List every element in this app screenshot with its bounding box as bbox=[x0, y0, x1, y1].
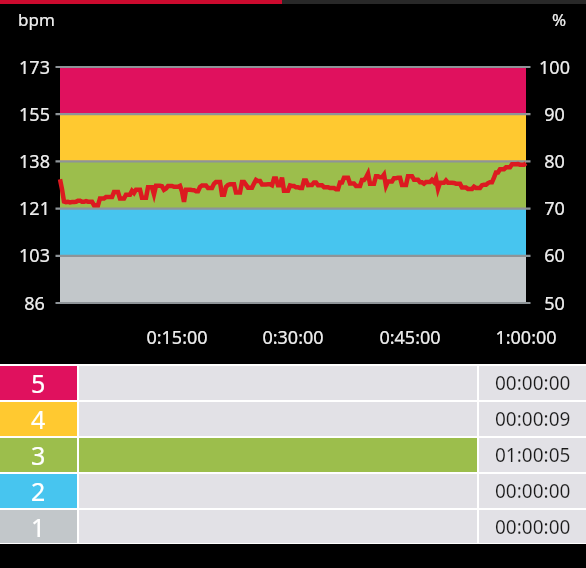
staticText: 60 bbox=[544, 243, 565, 268]
staticText: % bbox=[552, 8, 567, 31]
staticText: 155 bbox=[19, 102, 50, 127]
button[interactable]: 1 bbox=[0, 510, 586, 543]
staticText: 4 bbox=[31, 402, 46, 436]
other: Heart rate zone chart bbox=[0, 0, 586, 568]
staticText: 103 bbox=[19, 243, 50, 268]
button[interactable]: 2 bbox=[0, 474, 586, 508]
button[interactable]: 4 bbox=[0, 402, 586, 436]
staticText: 50 bbox=[544, 291, 565, 316]
staticText: 01:00:05 bbox=[495, 442, 571, 468]
staticText: 70 bbox=[544, 196, 565, 221]
staticText: 3 bbox=[31, 438, 46, 472]
staticText: 00:00:00 bbox=[495, 514, 571, 540]
staticText: 5 bbox=[31, 366, 46, 400]
staticText: 138 bbox=[19, 149, 50, 174]
staticText: 0:30:00 bbox=[262, 325, 324, 350]
staticText: 2 bbox=[31, 474, 46, 508]
button[interactable]: 5 bbox=[0, 366, 586, 400]
staticText: bpm bbox=[18, 8, 55, 31]
button[interactable]: 3 bbox=[0, 438, 586, 472]
staticText: 121 bbox=[19, 196, 50, 221]
staticText: 0:45:00 bbox=[379, 325, 441, 350]
staticText: 1:00:00 bbox=[495, 325, 557, 350]
staticText: 173 bbox=[19, 55, 50, 80]
staticText: 1 bbox=[31, 510, 46, 543]
staticText: 00:00:00 bbox=[495, 370, 571, 396]
staticText: 80 bbox=[544, 149, 565, 174]
staticText: 90 bbox=[544, 102, 565, 127]
staticText: 00:00:09 bbox=[495, 406, 571, 432]
staticText: 00:00:00 bbox=[495, 478, 571, 504]
staticText: 0:15:00 bbox=[146, 325, 208, 350]
staticText: 86 bbox=[24, 291, 45, 316]
staticText: 100 bbox=[539, 55, 570, 80]
